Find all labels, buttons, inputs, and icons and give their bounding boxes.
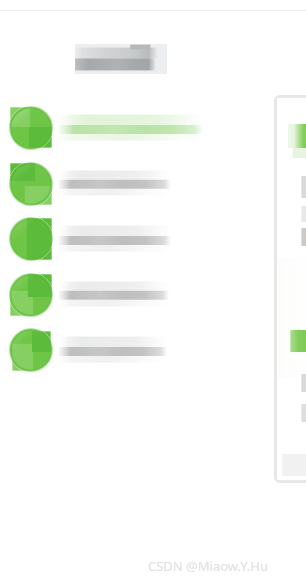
other: Contact avatar	[9, 273, 53, 317]
button[interactable]: Contact avatar	[0, 212, 240, 266]
button[interactable]: Contact avatar	[0, 323, 240, 377]
other: Contact avatar	[9, 328, 53, 372]
other: Contact avatar	[9, 162, 53, 206]
button[interactable]: Contact avatar	[0, 157, 240, 211]
button[interactable]: Contact avatar	[0, 101, 240, 155]
button[interactable]	[274, 95, 306, 483]
other: Contact avatar	[9, 106, 53, 150]
other: Contact avatar	[9, 217, 53, 261]
staticText: CSDN @Miaow.Y.Hu	[148, 557, 268, 575]
button[interactable]: Contact avatar	[0, 268, 240, 322]
